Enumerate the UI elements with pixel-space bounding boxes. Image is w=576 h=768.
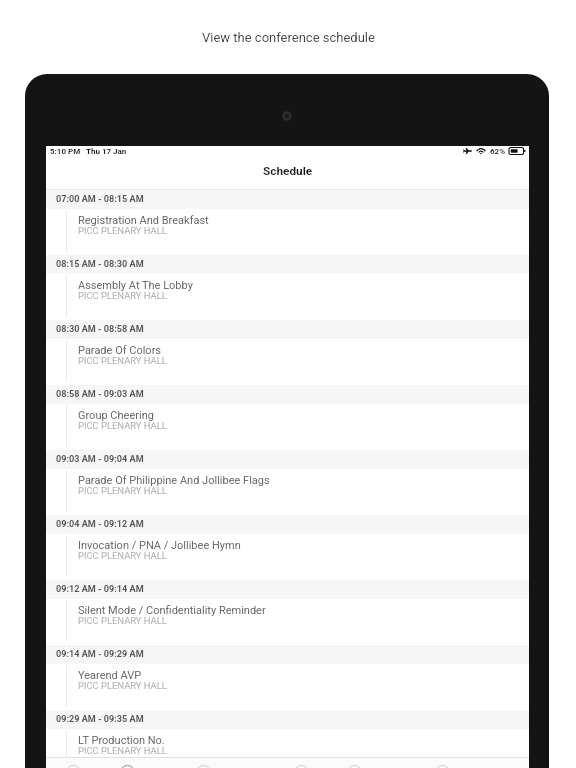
staticText: LT Production No. [78,734,165,747]
staticText: PICC PLENARY HALL [78,680,167,691]
button[interactable]: 08:15 AM - 08:30 AM [46,255,529,320]
button[interactable]: Agenda [105,758,149,768]
staticText: PICC PLENARY HALL [78,615,167,626]
staticText: 5:10 PM [50,147,81,156]
staticText: Thu 17 Jan [86,147,127,156]
button[interactable]: 09:14 AM - 09:29 AM [46,645,529,710]
staticText: 08:58 AM - 09:03 AM [56,389,144,400]
staticText: 08:15 AM - 08:30 AM [56,259,144,270]
staticText: PICC PLENARY HALL [78,420,167,431]
staticText: Registration And Breakfast [78,214,209,227]
staticText: 08:30 AM - 08:58 AM [56,324,144,335]
button[interactable]: 07:00 AM - 08:15 AM [46,190,529,255]
staticText: 09:03 AM - 09:04 AM [56,454,144,465]
staticText: Silent Mode / Confidentiality Reminder [78,604,266,617]
staticText: PICC PLENARY HALL [78,745,167,756]
staticText: PICC PLENARY HALL [78,225,167,236]
staticText: 09:12 AM - 09:14 AM [56,584,144,595]
staticText: 62% [490,147,506,156]
staticText: 09:14 AM - 09:29 AM [56,649,144,660]
button[interactable]: More [420,758,464,768]
staticText: Invocation / PNA / Jollibee Hymn [78,539,241,552]
button[interactable]: 08:58 AM - 09:03 AM [46,385,529,450]
staticText: PICC PLENARY HALL [78,355,167,366]
staticText: 09:04 AM - 09:12 AM [56,519,144,530]
staticText: View the conference schedule [202,30,375,45]
staticText: Schedule [263,164,313,178]
staticText: Group Cheering [78,409,154,422]
staticText: Assembly At The Lobby [78,279,193,292]
button[interactable]: 09:12 AM - 09:14 AM [46,580,529,645]
button[interactable]: Exhibitors [332,758,376,768]
button[interactable]: Map [279,758,323,768]
staticText: PICC PLENARY HALL [78,485,167,496]
staticText: 09:29 AM - 09:35 AM [56,714,144,725]
staticText: Parade Of Philippine And Jollibee Flags [78,474,270,487]
staticText: PICC PLENARY HALL [78,550,167,561]
button[interactable]: Home [51,758,95,768]
button[interactable]: 09:04 AM - 09:12 AM [46,515,529,580]
staticText: PICC PLENARY HALL [78,290,167,301]
button[interactable]: 08:30 AM - 08:58 AM [46,320,529,385]
staticText: Yearend AVP [78,669,142,682]
button[interactable]: 09:03 AM - 09:04 AM [46,450,529,515]
staticText: 07:00 AM - 08:15 AM [56,194,144,205]
button[interactable]: Speakers [181,758,225,768]
button[interactable]: 09:29 AM - 09:35 AM [46,710,529,768]
staticText: Parade Of Colors [78,344,162,357]
